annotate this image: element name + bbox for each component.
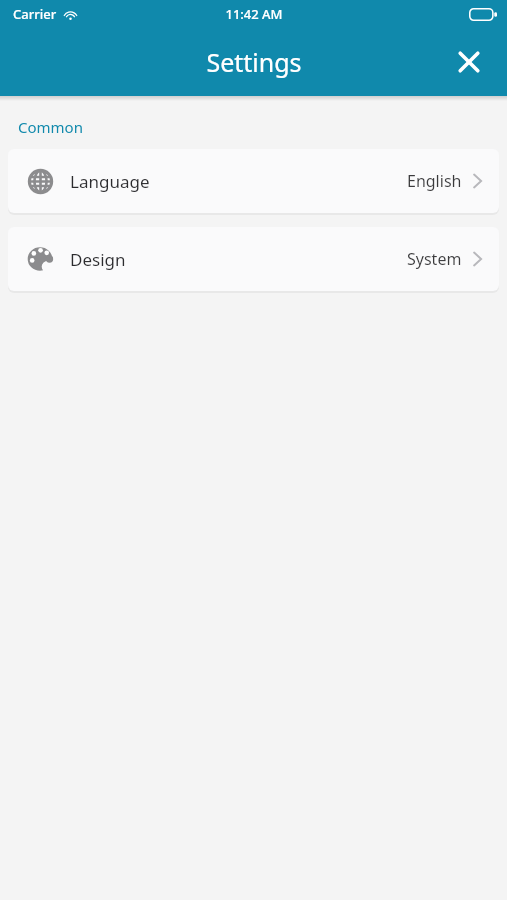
staticText: Settings bbox=[206, 45, 302, 79]
staticText: English bbox=[407, 170, 462, 192]
button[interactable]: Language bbox=[8, 149, 499, 213]
staticText: Design bbox=[70, 248, 126, 271]
staticText: Carrier bbox=[13, 5, 57, 23]
button[interactable]: Close bbox=[441, 34, 497, 90]
staticText: Language bbox=[70, 170, 150, 193]
staticText: 11:42 AM bbox=[225, 5, 283, 23]
staticText: System bbox=[407, 248, 462, 270]
staticText: Common bbox=[18, 117, 83, 137]
button[interactable]: Design bbox=[8, 227, 499, 291]
